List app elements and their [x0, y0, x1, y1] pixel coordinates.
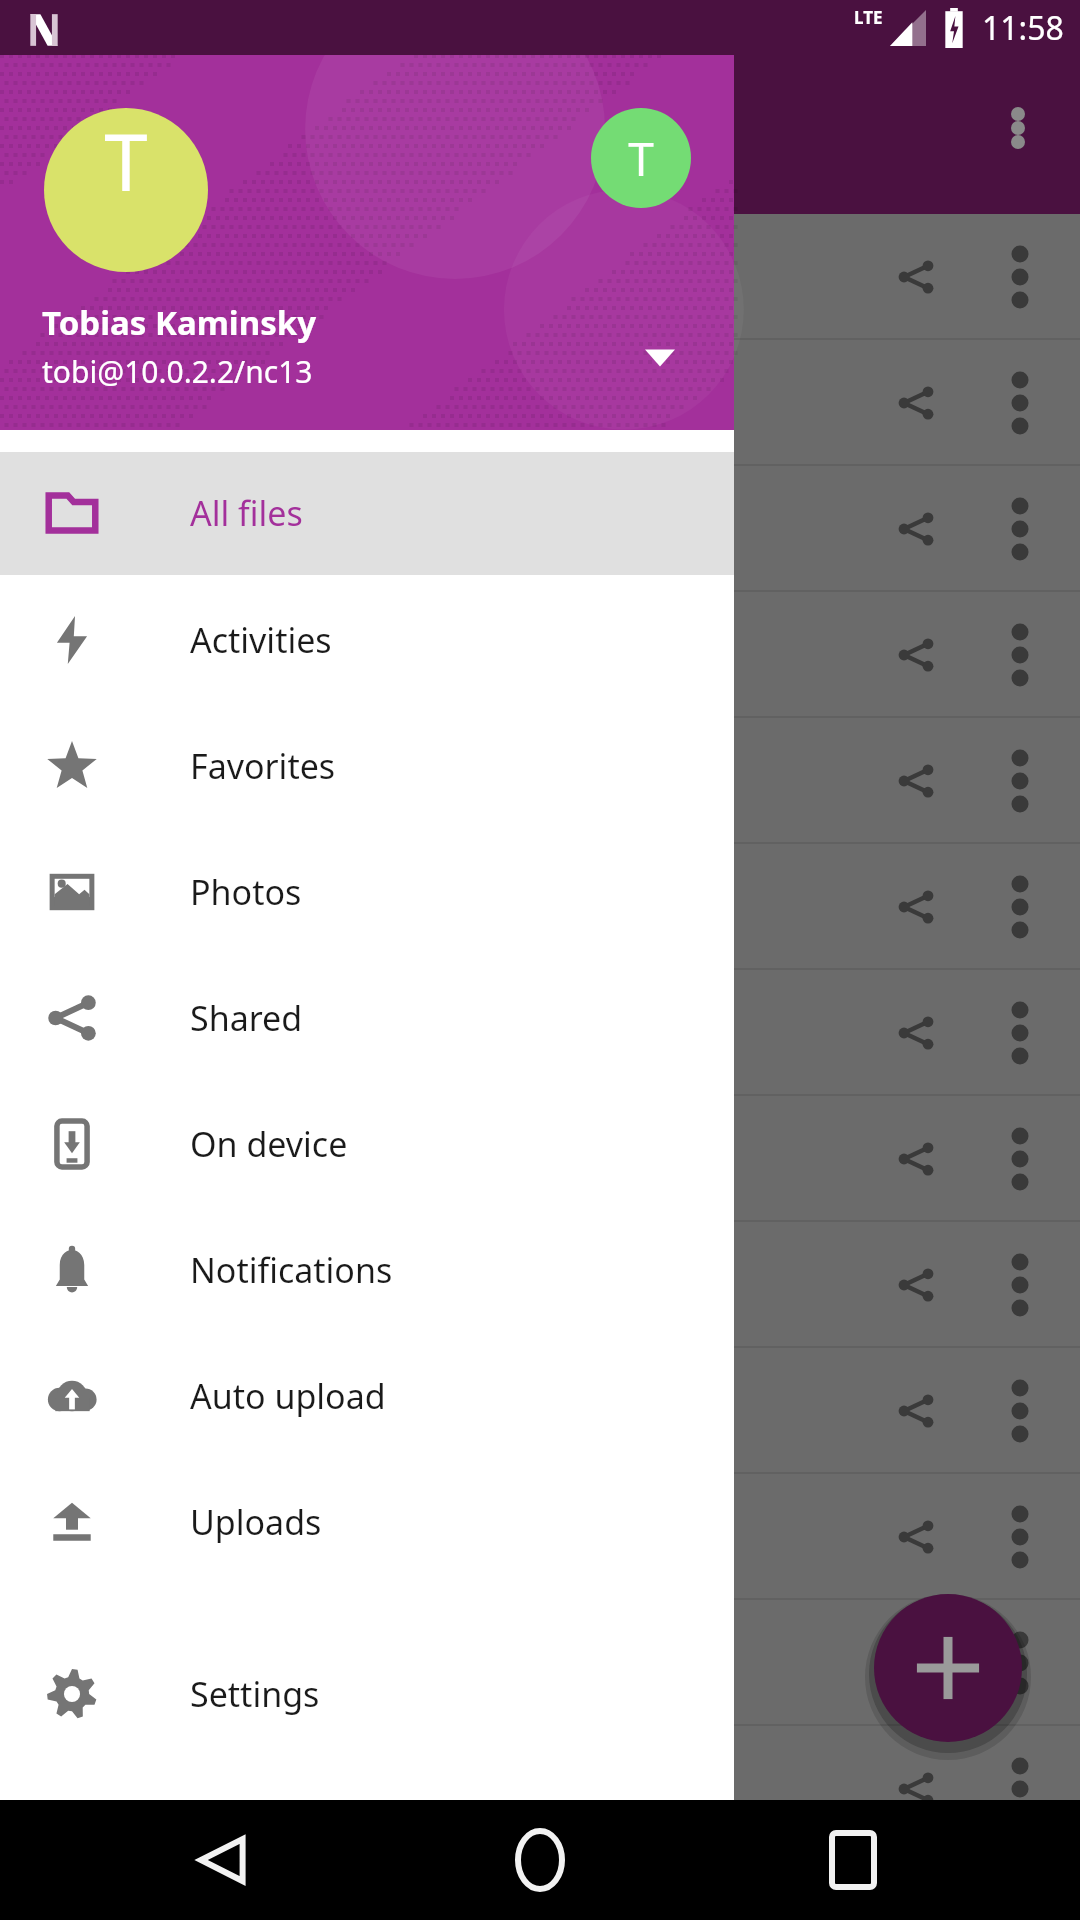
button[interactable]: [0, 970, 1080, 1096]
button[interactable]: Uploads: [0, 1459, 734, 1585]
button[interactable]: Home: [505, 1825, 575, 1895]
button[interactable]: All files: [0, 450, 734, 576]
staticText: Activities: [190, 617, 332, 663]
staticText: Photos: [190, 869, 302, 915]
button[interactable]: [0, 1348, 1080, 1474]
button[interactable]: [0, 466, 1080, 592]
button[interactable]: Photos: [0, 829, 734, 955]
button[interactable]: Shared: [0, 955, 734, 1081]
staticText: 11:58: [982, 6, 1064, 50]
staticText: T: [628, 127, 654, 190]
staticText: T: [44, 108, 208, 272]
button[interactable]: [0, 718, 1080, 844]
staticText: Tobias Kaminsky: [42, 300, 317, 345]
button[interactable]: [0, 1222, 1080, 1348]
button[interactable]: Auto upload: [0, 1333, 734, 1459]
staticText: Settings: [190, 1671, 320, 1717]
button[interactable]: [0, 844, 1080, 970]
button[interactable]: Add: [868, 1588, 1028, 1748]
button[interactable]: Show accounts: [624, 322, 696, 394]
button[interactable]: Recent apps: [818, 1825, 888, 1895]
button[interactable]: [0, 452, 734, 575]
button[interactable]: Switch account: [591, 108, 691, 208]
staticText: LTE: [854, 6, 883, 29]
staticText: Favorites: [190, 743, 336, 789]
button[interactable]: [0, 214, 1080, 340]
button[interactable]: More options: [988, 90, 1048, 150]
staticText: Shared: [190, 995, 303, 1041]
button[interactable]: T: [0, 0, 734, 430]
staticText: Notifications: [190, 1247, 393, 1293]
button[interactable]: Activities: [0, 577, 734, 703]
button[interactable]: [0, 1726, 1080, 1852]
staticText: On device: [190, 1121, 348, 1167]
staticText: Auto upload: [190, 1373, 386, 1419]
button[interactable]: Favorites: [0, 703, 734, 829]
button[interactable]: [0, 592, 1080, 718]
button[interactable]: Settings: [0, 1631, 734, 1757]
button[interactable]: [0, 340, 1080, 466]
staticText: tobi@10.0.2.2/nc13: [42, 351, 313, 392]
button[interactable]: [0, 1600, 1080, 1726]
button[interactable]: [0, 1474, 1080, 1600]
button[interactable]: [0, 1096, 1080, 1222]
staticText: All files: [190, 490, 303, 536]
staticText: Uploads: [190, 1499, 322, 1545]
button[interactable]: On device: [0, 1081, 734, 1207]
button[interactable]: Notifications: [0, 1207, 734, 1333]
button[interactable]: Back: [190, 1825, 260, 1895]
